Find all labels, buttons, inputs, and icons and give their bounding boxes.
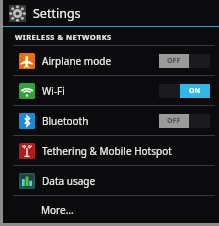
button[interactable]: Off (159, 54, 210, 68)
staticText: Airplane mode (42, 54, 112, 68)
staticText: Tethering & Mobile Hotspot (42, 144, 172, 158)
staticText: OFF (167, 116, 181, 126)
staticText: ON (189, 86, 201, 96)
staticText: Settings (33, 5, 81, 22)
staticText: Data usage (42, 174, 96, 188)
other: Settings (9, 5, 26, 22)
staticText: WIRELESS & NETWORKS (15, 32, 112, 42)
button[interactable]: Wi-Fi (3, 76, 219, 105)
button[interactable]: Tethering & Mobile Hotspot (3, 136, 219, 165)
staticText: OFF (167, 56, 181, 66)
button[interactable]: More... (3, 196, 219, 223)
button[interactable]: Bluetooth (3, 106, 219, 135)
button[interactable]: Airplane mode (3, 46, 219, 75)
staticText: Bluetooth (42, 114, 89, 128)
button[interactable]: Off (159, 114, 210, 128)
staticText: Wi-Fi (42, 84, 65, 98)
button[interactable]: On (159, 84, 210, 98)
button[interactable]: Data usage (3, 166, 219, 195)
button[interactable]: Settings (3, 0, 219, 26)
staticText: More... (41, 203, 74, 217)
